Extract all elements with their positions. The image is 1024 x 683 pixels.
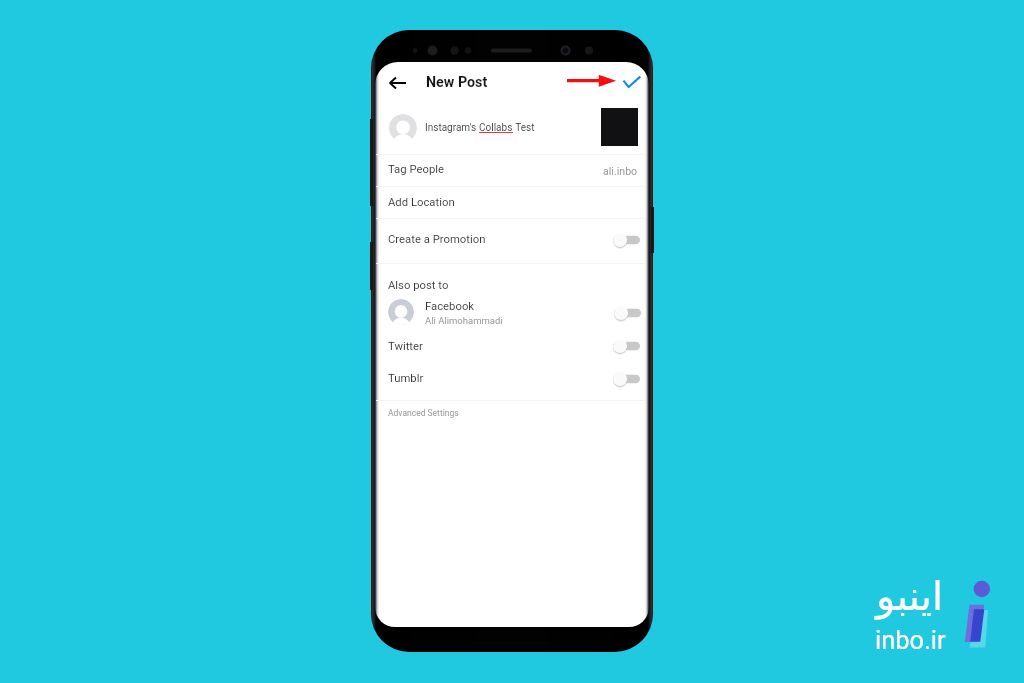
button[interactable] — [613, 232, 640, 248]
staticText: Tumblr — [388, 372, 424, 385]
button[interactable]: Advanced Settings — [388, 408, 459, 418]
button[interactable] — [613, 338, 640, 354]
staticText: ali.inbo — [603, 165, 638, 177]
button[interactable]: Back — [383, 69, 411, 97]
button[interactable]: Twitter — [376, 330, 646, 362]
button[interactable]: Tag People — [376, 153, 646, 185]
button[interactable] — [613, 371, 640, 387]
staticText: Tag People — [388, 163, 444, 176]
button[interactable]: Tumblr — [376, 362, 646, 395]
staticText: New Post — [426, 74, 488, 91]
staticText: inbo.ir — [875, 625, 946, 655]
staticText: Collabs — [479, 122, 513, 134]
staticText: Ali Alimohammadi — [425, 315, 503, 326]
button[interactable]: Share — [620, 70, 644, 94]
button[interactable]: Add Location — [376, 186, 646, 219]
staticText: Also post to — [388, 279, 449, 292]
button[interactable]: Facebook — [376, 298, 646, 330]
button[interactable] — [614, 305, 641, 321]
button[interactable]: Create a Promotion — [376, 217, 646, 262]
button[interactable]: Instagram's — [376, 102, 646, 155]
staticText: Add Location — [388, 196, 455, 209]
staticText: Facebook — [425, 300, 475, 313]
staticText: Create a Promotion — [388, 233, 486, 246]
staticText: Test — [513, 122, 535, 134]
staticText: اینبو — [876, 573, 944, 620]
staticText: Instagram's — [425, 122, 479, 134]
staticText: Twitter — [388, 340, 423, 353]
